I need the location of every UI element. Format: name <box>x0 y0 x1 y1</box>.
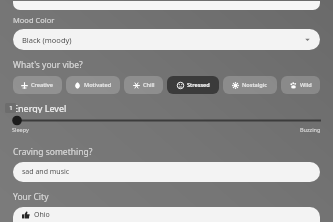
staticText: Wild <box>300 81 312 89</box>
staticText: Nostalgic <box>242 81 268 89</box>
button[interactable]: Energy Level slider <box>12 115 321 126</box>
button[interactable]: Stressed <box>167 76 219 94</box>
button[interactable]: sad and music <box>13 162 320 182</box>
button[interactable]: Black (moody) <box>13 29 320 50</box>
button[interactable]: Wild <box>281 76 320 94</box>
staticText: What's your vibe? <box>13 59 83 71</box>
button[interactable]: Motivated <box>66 76 120 94</box>
staticText: Ohio <box>34 210 50 220</box>
button[interactable]: Creative <box>13 76 62 94</box>
staticText: Craving something? <box>13 146 93 158</box>
button[interactable]: Chill <box>124 76 163 94</box>
button[interactable]: Ohio <box>13 207 320 222</box>
staticText: Sleepy <box>12 126 29 133</box>
staticText: 1 <box>9 104 13 112</box>
staticText: sad and music <box>22 167 70 177</box>
staticText: Mood Color <box>13 15 55 25</box>
staticText: Your City <box>13 191 49 203</box>
button[interactable]: Nostalgic <box>223 76 277 94</box>
staticText: Chill <box>143 81 155 89</box>
staticText: Motivated <box>84 81 112 89</box>
staticText: Creative <box>31 81 54 89</box>
staticText: Black (moody) <box>22 35 72 45</box>
staticText: Buzzing <box>300 126 321 133</box>
staticText: Energy Level <box>13 102 67 113</box>
staticText: Stressed <box>187 81 210 89</box>
button[interactable] <box>13 1 320 10</box>
